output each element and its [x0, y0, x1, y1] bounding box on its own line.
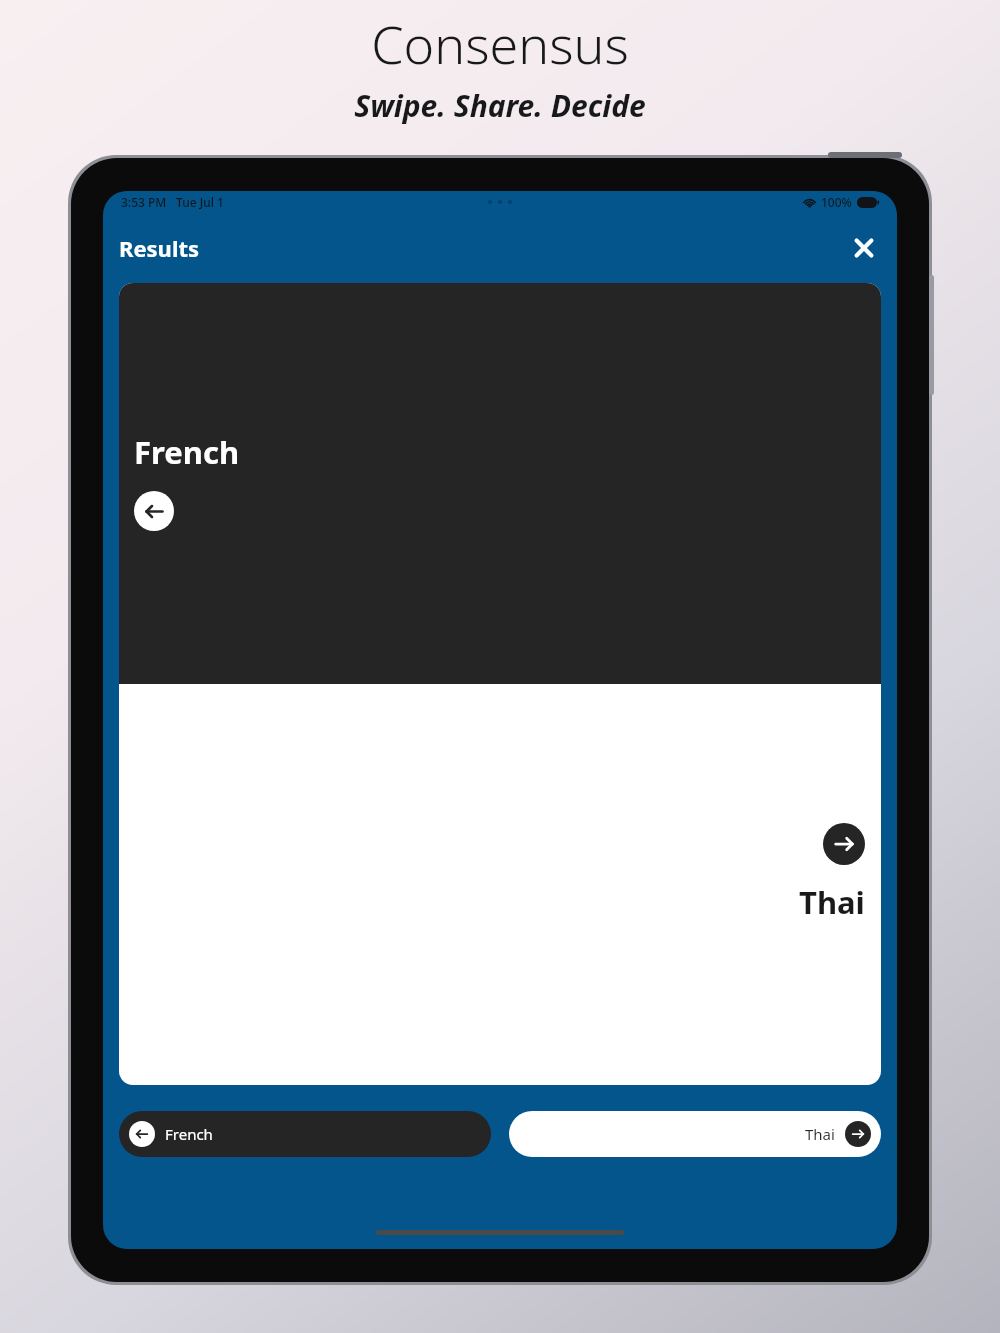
button[interactable]: French — [119, 1111, 491, 1157]
staticText: Thai — [805, 1124, 835, 1144]
staticText: Thai — [799, 881, 865, 923]
staticText: French — [165, 1124, 213, 1144]
staticText: French — [134, 431, 240, 473]
button[interactable]: Close — [847, 231, 881, 265]
button[interactable]: Results — [119, 233, 200, 263]
staticText: 3:53 PM — [121, 194, 167, 210]
staticText: Swipe. Share. Decide — [354, 85, 646, 126]
staticText: Consensus — [371, 8, 629, 79]
staticText: 100% — [821, 194, 852, 210]
button[interactable]: Swipe left for French — [134, 491, 174, 531]
staticText: Tue Jul 1 — [176, 194, 224, 210]
button[interactable]: Swipe right for Thai — [823, 823, 865, 865]
button[interactable]: Thai — [509, 1111, 881, 1157]
